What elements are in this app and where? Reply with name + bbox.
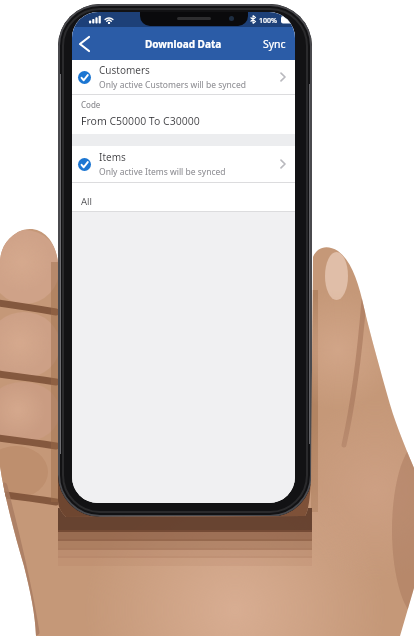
staticText: Only active Customers will be synced [99,79,246,91]
staticText: Items [99,150,126,164]
button[interactable]: All [72,183,295,211]
button[interactable]: Sync [263,37,295,51]
staticText: From C50000 To C30000 [81,114,200,128]
staticText: All [81,195,92,208]
button[interactable]: Items [72,146,295,182]
button[interactable]: Customers [72,60,295,94]
button[interactable] [72,32,96,56]
staticText: Code [81,99,101,110]
staticText: Only active Items will be synced [99,166,226,178]
staticText: Sync [263,37,286,51]
staticText: Customers [99,63,150,77]
staticText: Download Data [145,37,222,51]
staticText: 100% [259,16,277,26]
